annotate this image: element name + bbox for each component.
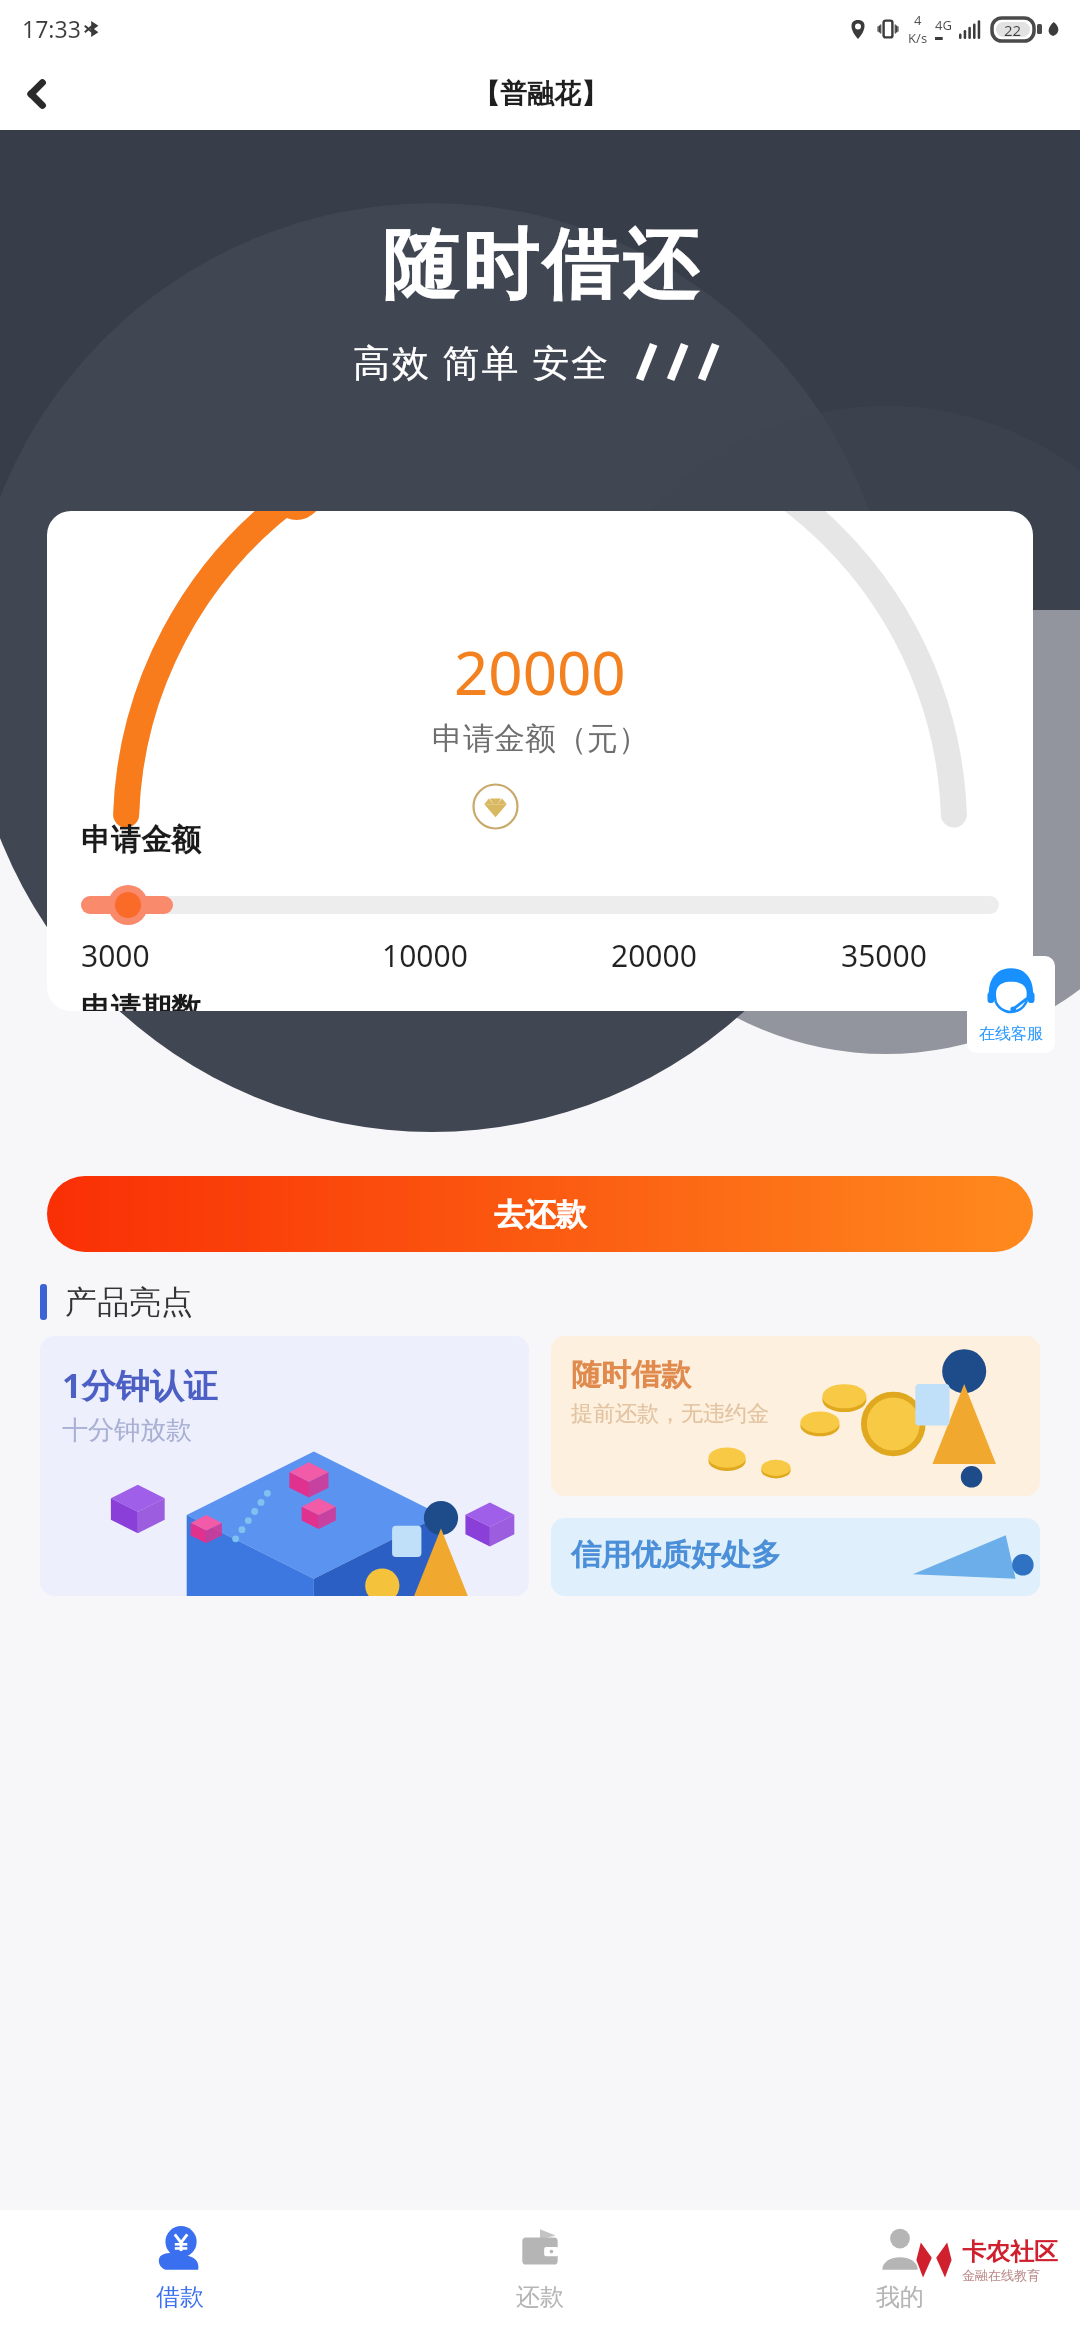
staticText: 4G [935,16,952,34]
staticText: 我的 [876,2282,924,2312]
button[interactable]: 还款 [360,2210,720,2340]
button[interactable]: 借款 [0,2210,360,2340]
button[interactable]: 1分钟认证 [40,1336,529,1596]
staticText: K/s [908,29,928,47]
button[interactable]: 3000 [81,935,150,976]
staticText: 35000 [841,935,927,976]
staticText: 随时借还 [380,218,700,314]
staticText: 高效 简单 安全 [353,336,611,387]
button[interactable]: Back [0,57,74,130]
button[interactable]: 去还款 [47,1176,1033,1252]
staticText: 【普融花】 [473,77,608,111]
staticText: 随时借款 [571,1356,691,1394]
staticText: 1分钟认证 [62,1362,218,1408]
button[interactable]: 35000 [841,935,927,976]
staticText: 在线客服 [979,1024,1043,1044]
staticText: 4 [914,11,922,29]
staticText: 十分钟放款 [62,1414,192,1447]
button[interactable]: 20000 [611,935,697,976]
staticText: 17:33 [22,13,81,44]
button[interactable]: VIP [472,783,519,830]
staticText: 还款 [516,2282,564,2312]
staticText: 提前还款，无违约金 [571,1400,769,1428]
button[interactable]: 随时借款 [551,1336,1040,1496]
staticText: 20000 [454,631,626,713]
button[interactable]: 在线客服 [967,956,1055,1053]
staticText: 卡农社区 [962,2237,1058,2267]
staticText: 借款 [156,2282,204,2312]
button[interactable]: 信用优质好处多 [551,1518,1040,1596]
button[interactable]: Amount slider [108,885,148,925]
staticText: 3000 [81,935,150,976]
staticText: 信用优质好处多 [571,1536,781,1574]
staticText: 20000 [611,935,697,976]
staticText: 申请金额 [81,821,201,859]
staticText: 产品亮点 [65,1282,193,1322]
button[interactable]: 我的 [720,2210,1080,2340]
staticText: 金融在线教育 [962,2267,1040,2283]
staticText: 10000 [382,935,468,976]
staticText: 22 [1004,20,1022,40]
staticText: 申请期数 [81,990,201,1011]
staticText: 去还款 [494,1195,587,1234]
staticText: 申请金额（元） [432,719,649,758]
button[interactable]: 10000 [382,935,468,976]
